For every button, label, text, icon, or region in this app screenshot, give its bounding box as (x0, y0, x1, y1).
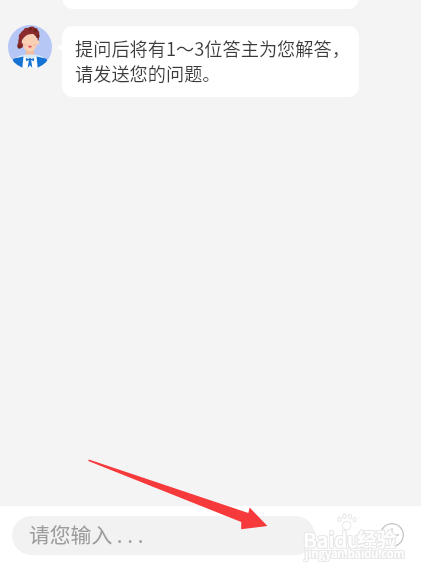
staticText: Baidu (303, 525, 360, 555)
staticText: 提问后将有1～3位答主为您解答， 请发送您的问题。 (75, 35, 350, 86)
staticText: Baidu (303, 524, 360, 554)
staticText: jingyan.baidu.com (304, 545, 404, 561)
staticText: jingyan.baidu.com (306, 544, 406, 560)
staticText: 经验 (356, 523, 396, 551)
staticText: Baidu (304, 525, 361, 555)
staticText: Baidu (302, 525, 359, 555)
staticText: Baidu (304, 524, 361, 554)
staticText: jingyan.baidu.com (305, 544, 405, 560)
staticText: jingyan.baidu.com (306, 545, 406, 561)
staticText: Baidu (303, 523, 360, 553)
staticText: jingyan.baidu.com (306, 546, 406, 562)
staticText: jingyan.baidu.com (304, 544, 404, 560)
button[interactable]: 提问后将有1～3位答主为您解答， 请发送您的问题。 (62, 26, 359, 97)
staticText: 经验 (357, 525, 397, 553)
button[interactable]: Add attachment (375, 518, 409, 552)
staticText: jingyan.baidu.com (305, 546, 405, 562)
staticText: Baidu (302, 523, 359, 553)
staticText: 请您输入 . . . (29, 519, 144, 549)
staticText: 经验 (356, 525, 396, 553)
staticText: Baidu (302, 524, 359, 554)
staticText: 经验 (358, 525, 398, 553)
staticText: 经验 (356, 524, 396, 552)
button[interactable]: 请您输入 . . . (12, 516, 315, 555)
staticText: jingyan.baidu.com (304, 546, 404, 562)
staticText: 经验 (357, 523, 397, 551)
staticText: Baidu (304, 523, 361, 553)
staticText: 经验 (358, 523, 398, 551)
staticText: 经验 (358, 524, 398, 552)
staticText: 经验 (357, 524, 397, 552)
staticText: jingyan.baidu.com (305, 545, 405, 561)
